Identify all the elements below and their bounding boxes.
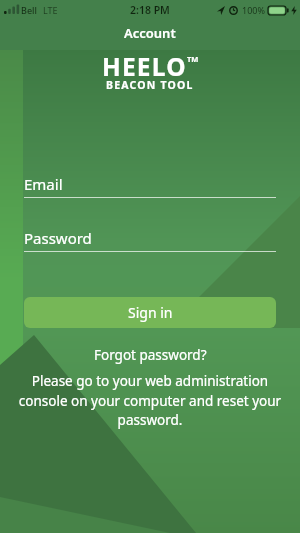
staticText: Account (124, 24, 176, 42)
staticText: Bell (21, 4, 37, 16)
button[interactable] (24, 228, 276, 252)
button[interactable] (24, 174, 276, 198)
staticText: TM (187, 54, 199, 64)
staticText: Password (24, 228, 92, 248)
staticText: Email (24, 174, 63, 194)
staticText: 100% (242, 4, 265, 16)
staticText: LTE (43, 4, 58, 16)
button[interactable]: Sign in (24, 297, 276, 328)
staticText: Please go to your web administration con… (14, 372, 286, 429)
staticText: HEELO (102, 50, 187, 83)
staticText: 2:18 PM (130, 3, 170, 17)
staticText: BEACON TOOL (106, 78, 194, 92)
staticText: Sign in (128, 303, 173, 322)
button[interactable]: Forgot password? (94, 346, 207, 364)
